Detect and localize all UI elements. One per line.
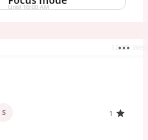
staticText: S <box>2 108 6 118</box>
staticText: 12:05 Wed <box>111 43 148 53</box>
button[interactable]: Contact avatar <box>0 103 13 122</box>
staticText: 1 <box>109 109 114 119</box>
button[interactable]: Focus mode <box>0 0 126 10</box>
button[interactable]: More options <box>115 39 133 57</box>
staticText: Until 10:00 AM <box>8 3 50 10</box>
staticText: Focus mode <box>8 0 68 7</box>
button[interactable]: 1 <box>109 107 125 120</box>
